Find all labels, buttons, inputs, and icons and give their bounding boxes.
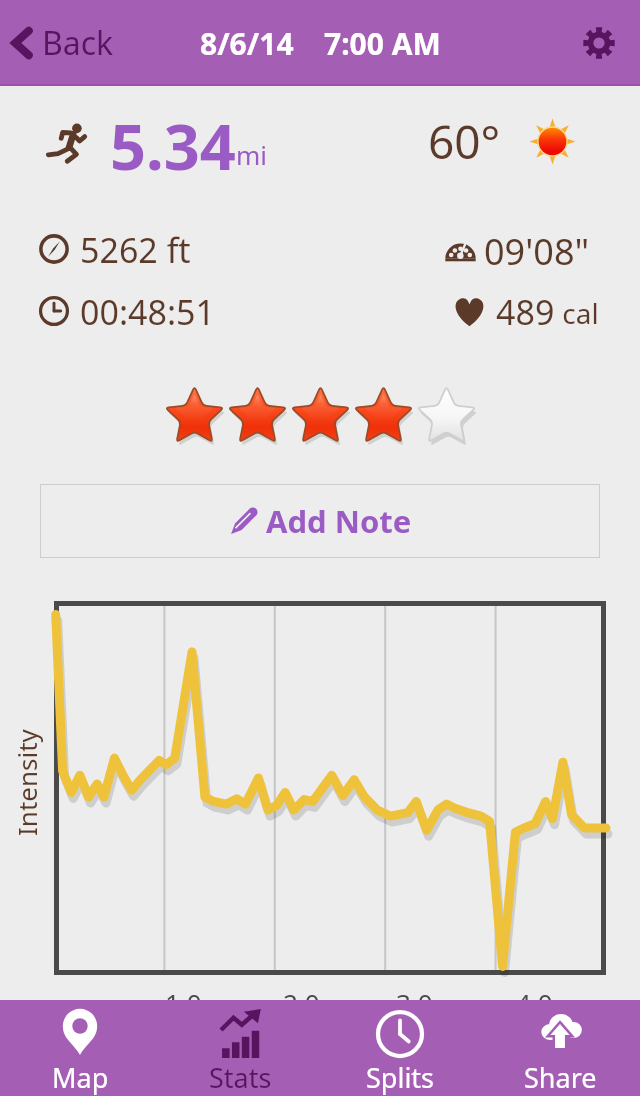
staticText: 8/6/14	[200, 23, 294, 64]
staticText: mi	[236, 137, 268, 172]
button[interactable]: Share	[480, 1000, 640, 1096]
button[interactable]: Splits	[320, 1000, 480, 1096]
staticText: 1.0	[165, 985, 202, 1020]
staticText: 00:48:51	[80, 289, 215, 333]
staticText: Share	[524, 1059, 597, 1096]
staticText: 2.0	[283, 985, 320, 1020]
staticText: Splits	[366, 1059, 435, 1096]
staticText: Add Note	[266, 500, 412, 542]
staticText: Back	[42, 21, 114, 65]
button[interactable]: Settings	[558, 0, 640, 86]
staticText: 5.34	[110, 103, 236, 179]
staticText: Intensity	[9, 729, 44, 836]
staticText: 489	[496, 289, 555, 333]
button[interactable]: Rating 4 of 5	[0, 385, 640, 447]
button[interactable]: Add Note	[40, 484, 600, 558]
staticText: 3.0	[396, 985, 433, 1020]
staticText: 09'08"	[484, 227, 590, 271]
button[interactable]: Back	[0, 0, 128, 86]
button[interactable]: Stats	[160, 1000, 320, 1096]
staticText: 7:00 AM	[324, 23, 441, 64]
staticText: Map	[52, 1059, 109, 1096]
staticText: 5262 ft	[80, 227, 191, 271]
staticText: 4.0	[516, 985, 553, 1020]
staticText: Stats	[209, 1059, 272, 1096]
button[interactable]: Map	[0, 1000, 160, 1096]
staticText: cal	[555, 294, 599, 332]
staticText: 60°	[428, 110, 501, 173]
